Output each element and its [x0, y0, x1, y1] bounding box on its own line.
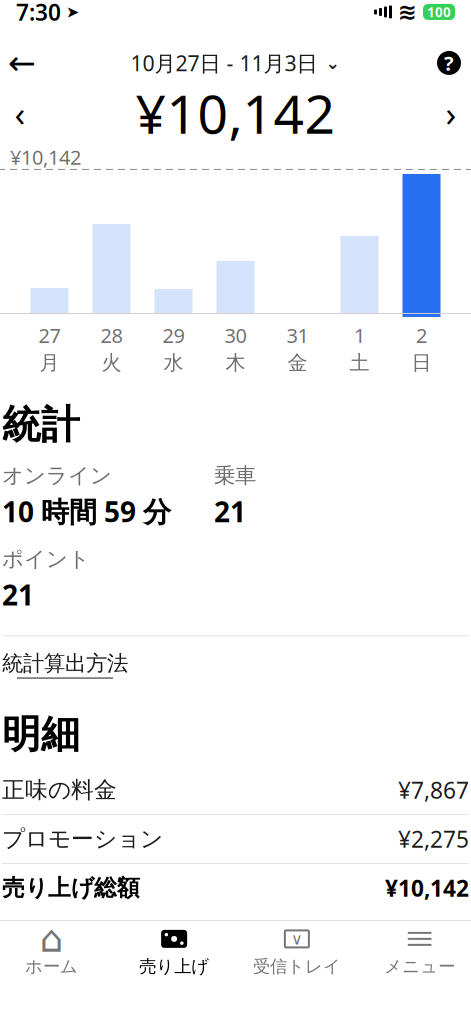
staticText: 明細	[2, 710, 80, 758]
staticText: 日	[411, 350, 431, 375]
staticText: ポイント	[2, 546, 90, 572]
staticText: ¥10,142	[385, 873, 469, 903]
staticText: 正味の料金	[2, 776, 117, 804]
staticText: 21	[214, 493, 246, 530]
staticText: 土	[349, 350, 369, 375]
staticText: 30	[224, 322, 246, 349]
staticText: 月	[39, 350, 59, 375]
button[interactable]: ⌂	[0, 919, 113, 985]
staticText: 統計算出方法	[2, 650, 128, 676]
staticText: メニュー	[384, 956, 455, 977]
staticText: 1	[354, 322, 365, 349]
button[interactable]: 統計算出方法	[2, 636, 469, 692]
staticText: 売り上げ総額	[2, 874, 140, 902]
staticText: 7:30	[16, 0, 61, 27]
button[interactable]: ヘルプ	[425, 41, 471, 85]
staticText: ‹	[14, 90, 25, 136]
button[interactable]: 戻る	[0, 41, 46, 85]
staticText: 2	[416, 322, 427, 349]
button[interactable]: 前の週	[0, 88, 42, 138]
staticText: 受信トレイ	[253, 956, 341, 977]
staticText: 29	[162, 322, 184, 349]
staticText: ➤	[66, 3, 79, 21]
staticText: 10月27日 - 11月3日	[130, 49, 317, 77]
staticText: ←	[8, 44, 36, 82]
staticText: ¥7,867	[398, 775, 469, 805]
staticText: ¥10,142	[135, 77, 335, 148]
button[interactable]: 売り上げ	[113, 919, 236, 985]
staticText: ›	[445, 90, 456, 136]
button[interactable]: メニュー	[358, 919, 471, 985]
staticText: ∨	[291, 930, 303, 948]
button[interactable]: 次の週	[429, 88, 471, 138]
staticText: 21	[2, 576, 34, 613]
staticText: ホーム	[25, 956, 78, 977]
staticText: 水	[163, 350, 183, 375]
staticText: ≋	[398, 0, 417, 25]
staticText: ⌄	[325, 53, 340, 73]
staticText: 100	[427, 3, 451, 21]
staticText: ⌂	[39, 918, 63, 960]
staticText: 火	[101, 350, 121, 375]
staticText: ¥2,275	[398, 824, 469, 854]
staticText: 10 時間 59 分	[2, 493, 171, 530]
staticText: 乗車	[214, 463, 256, 489]
button[interactable]: ∨	[235, 919, 358, 985]
staticText: ?	[444, 50, 454, 76]
staticText: 金	[287, 350, 307, 375]
button[interactable]: 10月27日 - 11月3日	[124, 41, 346, 85]
staticText: 27	[38, 322, 60, 349]
staticText: 売り上げ	[139, 956, 209, 977]
staticText: オンライン	[2, 463, 112, 489]
staticText: 統計	[2, 401, 80, 449]
staticText: 28	[100, 322, 122, 349]
staticText: ¥10,142	[10, 144, 81, 170]
staticText: 31	[286, 322, 308, 349]
staticText: プロモーション	[2, 825, 163, 853]
staticText: 木	[225, 350, 245, 375]
